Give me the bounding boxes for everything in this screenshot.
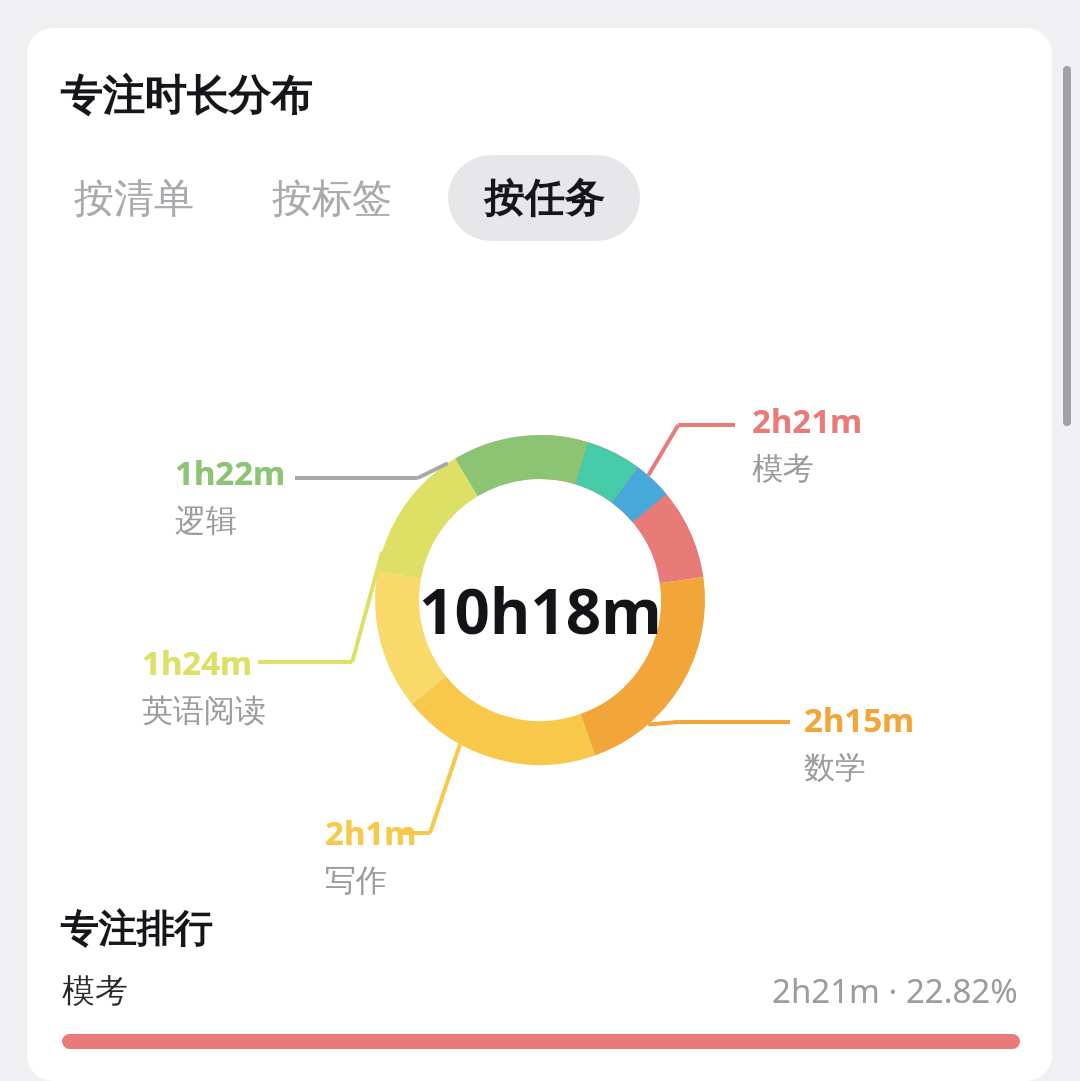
staticText: 2h1m [325, 810, 417, 855]
button[interactable]: 按标签 [258, 159, 406, 237]
button[interactable]: 按清单 [60, 159, 208, 237]
staticText: 2h15m [804, 697, 915, 742]
staticText: 数学 [804, 748, 866, 787]
staticText: 按任务 [484, 173, 604, 223]
staticText: 写作 [325, 861, 387, 900]
staticText: 2h21m [752, 398, 863, 443]
staticText: 模考 [62, 970, 128, 1012]
staticText: 2h21m · 22.82% [772, 968, 1018, 1013]
button[interactable]: 模考 [0, 968, 1080, 1013]
staticText: 按清单 [74, 173, 194, 223]
staticText: 1h22m [175, 450, 286, 495]
staticText: 逻辑 [175, 501, 237, 540]
staticText: 1h24m [142, 640, 253, 685]
staticText: 专注时长分布 [60, 70, 312, 123]
button[interactable]: 按任务 [448, 155, 640, 241]
staticText: 10h18m [419, 568, 662, 652]
staticText: 按标签 [272, 173, 392, 223]
staticText: 专注排行 [60, 905, 212, 953]
staticText: 英语阅读 [142, 691, 266, 730]
staticText: 模考 [752, 449, 814, 488]
